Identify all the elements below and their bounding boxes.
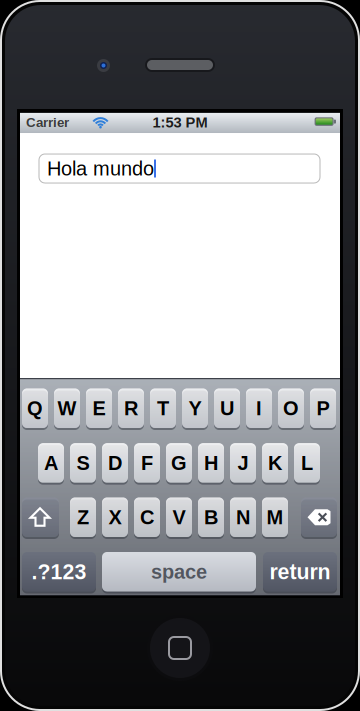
button[interactable]: P <box>310 388 336 430</box>
button[interactable]: X <box>102 497 128 539</box>
button[interactable]: J <box>230 443 256 485</box>
staticText: C <box>140 506 154 528</box>
button[interactable]: W <box>54 388 80 430</box>
staticText: H <box>204 452 218 474</box>
button[interactable]: .?123 <box>22 552 96 593</box>
staticText: K <box>268 452 282 474</box>
button[interactable]: I <box>246 388 272 430</box>
button[interactable]: O <box>278 388 304 430</box>
button[interactable]: space <box>102 552 256 593</box>
button[interactable]: S <box>70 443 96 485</box>
staticText: L <box>301 452 313 474</box>
staticText: P <box>316 397 329 419</box>
staticText: .?123 <box>31 560 86 584</box>
staticText: 1:53 PM <box>152 114 207 131</box>
button[interactable]: return <box>263 552 337 593</box>
staticText: W <box>57 397 76 419</box>
staticText: B <box>204 506 218 528</box>
staticText: M <box>266 506 283 528</box>
button[interactable]: G <box>166 443 192 485</box>
button[interactable]: R <box>118 388 144 430</box>
staticText: Z <box>77 506 89 528</box>
button[interactable]: Z <box>70 497 96 539</box>
staticText: D <box>108 452 122 474</box>
button[interactable]: Shift <box>22 497 59 539</box>
staticText: N <box>236 506 250 528</box>
staticText: O <box>283 397 299 419</box>
staticText: E <box>92 397 105 419</box>
staticText: X <box>108 506 121 528</box>
staticText: J <box>237 452 248 474</box>
staticText: R <box>124 397 138 419</box>
staticText: Hola mundo <box>47 157 154 180</box>
button[interactable]: Y <box>182 388 208 430</box>
staticText: space <box>151 561 207 583</box>
button[interactable]: E <box>86 388 112 430</box>
button[interactable]: T <box>150 388 176 430</box>
staticText: S <box>76 452 89 474</box>
button[interactable]: L <box>294 443 320 485</box>
button[interactable]: H <box>198 443 224 485</box>
button[interactable]: C <box>134 497 160 539</box>
button[interactable]: A <box>38 443 64 485</box>
button[interactable]: F <box>134 443 160 485</box>
button[interactable]: D <box>102 443 128 485</box>
button[interactable]: K <box>262 443 288 485</box>
button[interactable]: Q <box>22 388 48 430</box>
staticText: T <box>157 397 169 419</box>
staticText: V <box>172 506 185 528</box>
button[interactable]: B <box>198 497 224 539</box>
staticText: U <box>220 397 234 419</box>
button[interactable]: N <box>230 497 256 539</box>
staticText: F <box>141 452 153 474</box>
staticText: return <box>269 560 330 584</box>
button[interactable]: M <box>262 497 288 539</box>
button[interactable]: Delete <box>301 497 337 539</box>
staticText: Y <box>188 397 201 419</box>
staticText: I <box>256 397 262 419</box>
staticText: Q <box>27 397 43 419</box>
staticText: G <box>171 452 187 474</box>
staticText: Carrier <box>26 115 69 130</box>
staticText: A <box>44 452 58 474</box>
button[interactable]: U <box>214 388 240 430</box>
button[interactable]: V <box>166 497 192 539</box>
